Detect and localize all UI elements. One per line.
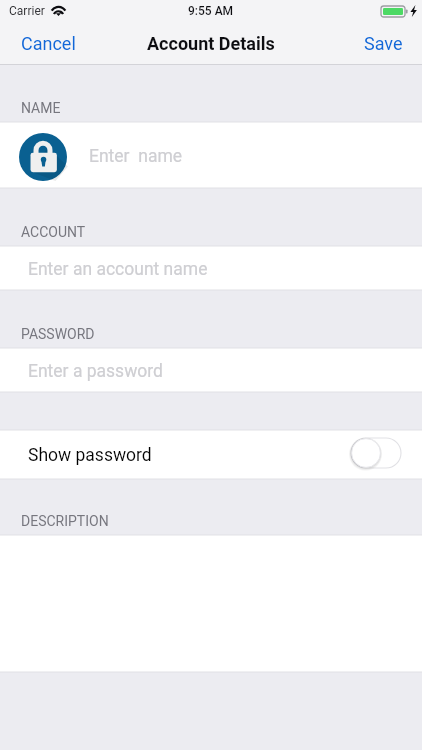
button[interactable]: Show password [0,430,422,479]
button[interactable]: Enter an account name [0,246,422,290]
other: Battery charging [381,6,408,17]
staticText: Cancel [21,33,76,54]
button[interactable]: Show password [351,438,401,468]
staticText: Save [364,33,403,54]
staticText: ACCOUNT [21,224,86,240]
staticText: Show password [28,445,152,466]
button[interactable]: Cancel [0,22,100,65]
staticText: Account Details [147,33,275,54]
staticText: Enter a password [28,361,163,382]
other: Wi-Fi signal [51,5,66,16]
staticText: PASSWORD [21,326,95,342]
staticText: Carrier [9,4,45,18]
staticText: Enter name [89,146,183,167]
staticText: DESCRIPTION [21,513,109,529]
staticText: 9:55 AM [188,4,234,18]
staticText: Enter an account name [28,259,208,280]
button[interactable]: Save [332,22,422,65]
button[interactable]: Enter name [0,122,422,188]
button[interactable]: Enter a password [0,348,422,392]
staticText: NAME [21,100,61,116]
